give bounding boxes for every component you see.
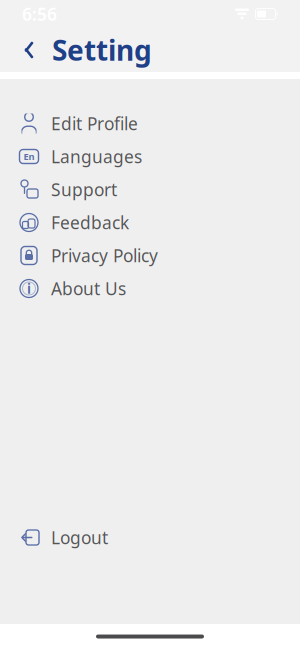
button[interactable]: Edit Profile <box>0 107 300 140</box>
button[interactable]: Logout <box>0 521 300 554</box>
button[interactable]: Privacy Policy <box>0 239 300 272</box>
button[interactable]: En <box>0 140 300 173</box>
staticText: 6:56 <box>22 2 57 25</box>
staticText: Languages <box>51 145 142 168</box>
staticText: Logout <box>51 526 108 549</box>
staticText: i <box>27 280 31 297</box>
button[interactable]: i <box>0 272 300 305</box>
button[interactable]: Back <box>16 37 42 63</box>
staticText: Setting <box>52 31 152 69</box>
staticText: Support <box>51 178 117 201</box>
button[interactable]: Feedback <box>0 206 300 239</box>
button[interactable]: Support <box>0 173 300 206</box>
staticText: En <box>23 150 34 163</box>
staticText: Privacy Policy <box>51 244 158 267</box>
staticText: Edit Profile <box>51 112 138 135</box>
staticText: About Us <box>51 277 126 300</box>
staticText: Feedback <box>51 211 129 234</box>
